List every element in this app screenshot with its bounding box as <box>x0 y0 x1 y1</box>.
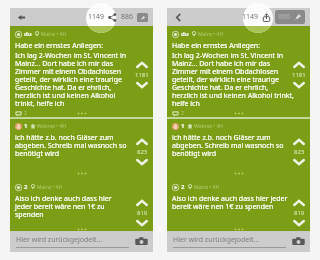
button[interactable]: Upvote <box>291 198 307 208</box>
button[interactable]: Pin <box>137 13 148 22</box>
staticText: du <box>181 30 189 38</box>
button[interactable]: Share <box>262 13 271 22</box>
button[interactable]: Camera <box>292 235 305 248</box>
staticText: du <box>24 30 32 38</box>
staticText: ich hätte z.b. noch Gläser zum abgeben. … <box>15 133 127 158</box>
staticText: 823 <box>294 148 305 156</box>
button[interactable]: Upvote <box>134 137 150 147</box>
button[interactable]: Upvote <box>291 137 307 147</box>
staticText: Habe ein ernstes Anliegen: <box>172 41 261 51</box>
staticText: Mainz • 4H <box>41 31 67 38</box>
button[interactable]: Downvote <box>134 218 150 228</box>
staticText: Mainz • 4H <box>198 31 224 38</box>
button[interactable]: Back <box>172 11 185 24</box>
staticText: Ich lag 2-Wochen im St. Vincent in Mainz… <box>172 51 294 108</box>
button[interactable]: Downvote <box>134 80 150 90</box>
staticText: Wohnst • 4H <box>194 123 224 130</box>
staticText: 2 <box>24 110 27 117</box>
staticText: 1149 <box>242 12 259 22</box>
staticText: Hier wird zurückgejodelt... <box>173 235 260 245</box>
staticText: 886 <box>121 12 134 22</box>
staticText: Also ich denke auch dass hier jeder bere… <box>15 194 112 219</box>
button[interactable]: Upvote <box>134 60 150 70</box>
staticText: 886 <box>278 12 291 22</box>
button[interactable]: Camera <box>135 235 148 248</box>
staticText: ich hätte z.b. noch Gläser zum abgeben. … <box>172 133 284 158</box>
staticText: 1149 <box>88 12 105 22</box>
staticText: Mainz • 4H <box>194 184 220 191</box>
button[interactable]: Share <box>108 13 117 22</box>
staticText: Ich lag 2-Wochen im St. Vincent in Mainz… <box>15 51 127 108</box>
button[interactable]: Downvote <box>291 157 307 167</box>
button[interactable]: Downvote <box>291 80 307 90</box>
button[interactable]: Upvote <box>134 198 150 208</box>
button[interactable]: Back <box>15 11 28 24</box>
staticText: 2 <box>24 183 28 191</box>
staticText: 819 <box>137 209 148 217</box>
staticText: Also ich denke auch dass hier jeder bere… <box>172 194 288 211</box>
staticText: 1 <box>24 122 28 130</box>
staticText: Habe ein ernstes Anliegen: <box>15 41 104 51</box>
staticText: 1181 <box>292 71 306 79</box>
staticText: 1181 <box>135 71 149 79</box>
button[interactable]: Upvote <box>291 60 307 70</box>
button[interactable]: Downvote <box>134 157 150 167</box>
staticText: 819 <box>294 209 305 217</box>
button[interactable]: Pin 886 <box>278 12 302 22</box>
button[interactable]: Downvote <box>291 218 307 228</box>
staticText: 2 <box>181 110 184 117</box>
staticText: 1 <box>181 122 185 130</box>
staticText: Hier wird zurückgejodelt... <box>16 235 103 245</box>
staticText: 823 <box>137 148 148 156</box>
staticText: Mainz • 4H <box>37 184 63 191</box>
staticText: 2 <box>181 183 185 191</box>
staticText: Wohnst • 4H <box>37 123 67 130</box>
